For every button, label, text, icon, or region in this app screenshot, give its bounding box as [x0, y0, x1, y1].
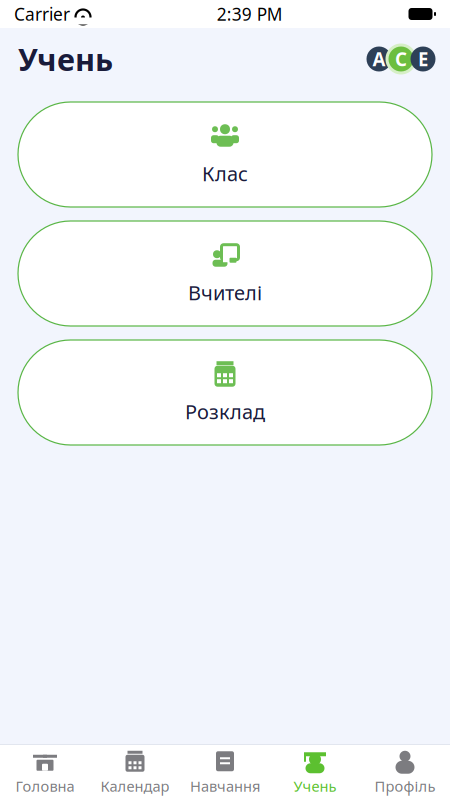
staticText: Профіль [374, 776, 435, 796]
button[interactable]: Учень [270, 745, 360, 800]
staticText: Календар [100, 776, 169, 796]
staticText: Клас [202, 160, 248, 187]
staticText: C [395, 47, 407, 71]
staticText: Розклад [185, 398, 265, 425]
staticText: Головна [15, 776, 74, 796]
staticText: Carrier [14, 2, 70, 25]
button[interactable]: Календар [90, 745, 180, 800]
button[interactable]: Навчання [180, 745, 270, 800]
button[interactable]: Профіль [360, 745, 450, 800]
button[interactable]: ACE logo [370, 43, 432, 75]
staticText: Учень [18, 39, 113, 79]
button[interactable]: Розклад [18, 340, 432, 445]
staticText: Вчителі [188, 279, 262, 306]
button[interactable]: Вчителі [18, 221, 432, 326]
staticText: Навчання [190, 776, 260, 796]
staticText: A [372, 47, 385, 71]
staticText: Учень [293, 776, 336, 796]
button[interactable]: Клас [18, 102, 432, 207]
staticText: E [418, 47, 428, 71]
staticText: 2:39 PM [217, 2, 283, 25]
button[interactable]: Головна [0, 745, 90, 800]
